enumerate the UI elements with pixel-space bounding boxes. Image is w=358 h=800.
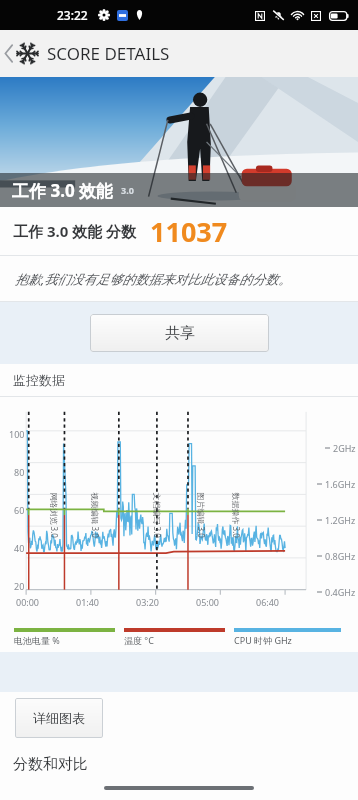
staticText: 文档编写 3.0 bbox=[151, 492, 162, 538]
staticText: 03:20 bbox=[136, 596, 160, 608]
staticText: 40 bbox=[14, 542, 25, 554]
staticText: 网络浏览 3.0 bbox=[48, 492, 59, 538]
button[interactable]: 详细图表 bbox=[15, 698, 103, 738]
staticText: 视频编辑 3.0 bbox=[89, 492, 100, 538]
staticText: 分数和对比 bbox=[13, 755, 88, 774]
staticText: 80 bbox=[14, 466, 25, 478]
staticText: 1.6GHz bbox=[325, 478, 356, 490]
staticText: 60 bbox=[14, 504, 25, 516]
staticText: 工作 3.0 效能 分数 bbox=[13, 221, 137, 241]
staticText: CPU 时钟 GHz bbox=[234, 634, 292, 646]
staticText: 05:00 bbox=[196, 596, 220, 608]
staticText: 工作 3.0 效能 bbox=[12, 179, 114, 202]
staticText: 01:40 bbox=[76, 596, 100, 608]
staticText: 抱歉,我们没有足够的数据来对比此设备的分数。 bbox=[15, 270, 292, 288]
staticText: 共享 bbox=[165, 324, 195, 343]
button[interactable]: 共享 bbox=[90, 314, 269, 352]
staticText: 23:22 bbox=[57, 7, 88, 23]
staticText: 00:00 bbox=[16, 596, 40, 608]
staticText: 06:40 bbox=[256, 596, 280, 608]
staticText: 温度 °C bbox=[124, 634, 154, 646]
staticText: 20 bbox=[14, 580, 25, 592]
staticText: 2GHz bbox=[333, 442, 356, 454]
staticText: 详细图表 bbox=[33, 710, 85, 726]
staticText: 图片编辑 3.0 bbox=[195, 492, 206, 538]
staticText: SCORE DETAILS bbox=[47, 42, 170, 65]
staticText: 1.2GHz bbox=[325, 514, 356, 526]
staticText: 100 bbox=[9, 428, 25, 440]
staticText: 0.4GHz bbox=[325, 586, 356, 598]
staticText: 监控数据 bbox=[13, 372, 65, 388]
button[interactable]: Back bbox=[0, 30, 358, 77]
staticText: 3.0 bbox=[121, 184, 134, 196]
staticText: 电池电量 % bbox=[14, 634, 60, 646]
staticText: 11037 bbox=[150, 213, 228, 250]
staticText: 0.8GHz bbox=[325, 550, 356, 562]
other: Back bbox=[4, 44, 14, 63]
staticText: 数据操作 3.0 bbox=[230, 492, 241, 538]
